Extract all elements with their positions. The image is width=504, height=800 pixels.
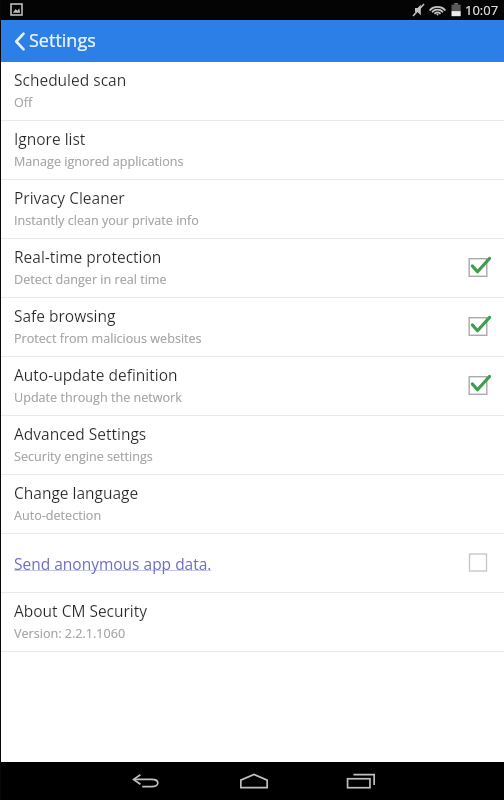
button[interactable]: Ignore list bbox=[0, 121, 504, 180]
staticText: Update through the network bbox=[14, 389, 182, 406]
staticText: Settings bbox=[29, 28, 96, 53]
button[interactable]: Home bbox=[227, 762, 281, 800]
button[interactable]: Auto-update definition toggle bbox=[465, 373, 491, 399]
button[interactable]: Back bbox=[119, 762, 173, 800]
staticText: Ignore list bbox=[14, 128, 86, 149]
button[interactable]: Real-time protection bbox=[0, 239, 504, 298]
staticText: About CM Security bbox=[14, 600, 148, 621]
button[interactable]: Send anonymous app data. bbox=[0, 534, 504, 593]
staticText: Detect danger in real time bbox=[14, 271, 167, 288]
button[interactable]: Safe browsing bbox=[0, 298, 504, 357]
staticText: Safe browsing bbox=[14, 305, 116, 326]
button[interactable]: Auto-update definition bbox=[0, 357, 504, 416]
button[interactable]: Change language bbox=[0, 475, 504, 534]
staticText: Version: 2.2.1.1060 bbox=[14, 625, 126, 642]
staticText: Advanced Settings bbox=[14, 423, 147, 444]
staticText: Security engine settings bbox=[14, 448, 153, 465]
button[interactable]: Privacy Cleaner bbox=[0, 180, 504, 239]
staticText: Scheduled scan bbox=[14, 69, 127, 90]
staticText: Send anonymous app data. bbox=[14, 553, 212, 574]
staticText: Auto-detection bbox=[14, 507, 102, 524]
button[interactable]: Back bbox=[0, 20, 30, 62]
staticText: Off bbox=[14, 94, 33, 111]
button[interactable]: Recent apps bbox=[334, 762, 388, 800]
staticText: Manage ignored applications bbox=[14, 153, 184, 170]
button[interactable]: About CM Security bbox=[0, 593, 504, 652]
staticText: Instantly clean your private info bbox=[14, 212, 199, 229]
staticText: 10:07 bbox=[465, 1, 499, 19]
staticText: Protect from malicious websites bbox=[14, 330, 202, 347]
button[interactable]: Send anonymous app data toggle bbox=[465, 550, 491, 576]
staticText: Change language bbox=[14, 482, 139, 503]
button[interactable]: Scheduled scan bbox=[0, 62, 504, 121]
button[interactable]: Safe browsing toggle bbox=[465, 314, 491, 340]
button[interactable]: Advanced Settings bbox=[0, 416, 504, 475]
staticText: Auto-update definition bbox=[14, 364, 178, 385]
staticText: Privacy Cleaner bbox=[14, 187, 125, 208]
staticText: Real-time protection bbox=[14, 246, 162, 267]
button[interactable]: Real-time protection toggle bbox=[465, 255, 491, 281]
